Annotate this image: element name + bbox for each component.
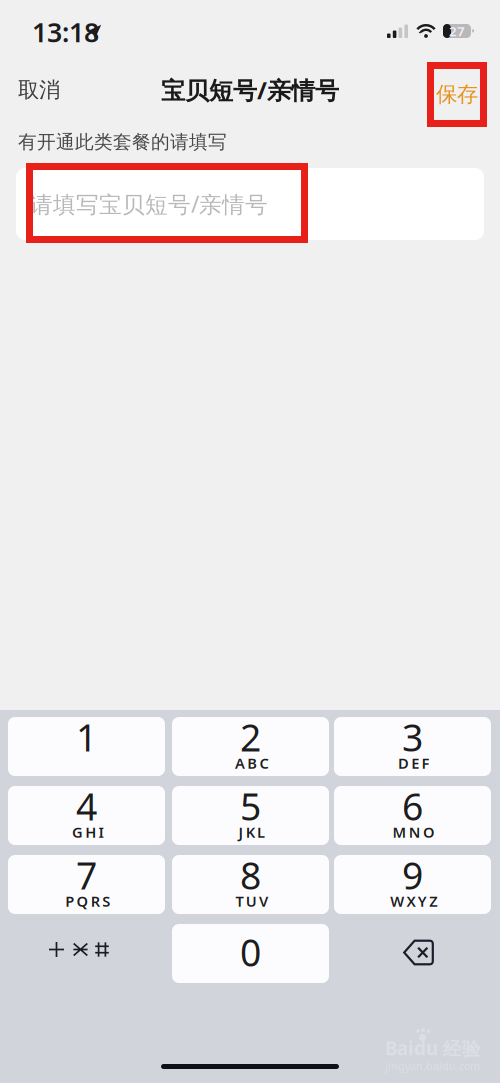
button[interactable]: 4 [8,786,165,845]
staticText: TUV [235,891,268,911]
staticText: 13:18 [32,14,99,50]
button[interactable]: 1 [8,717,165,776]
staticText: 9 [402,850,423,900]
staticText: 保存 [436,81,478,108]
button[interactable]: 7 [8,855,165,914]
button[interactable]: 8 [172,855,329,914]
staticText: 4 [76,781,97,831]
staticText: GHI [72,822,103,842]
staticText: WXYZ [390,891,437,911]
staticText: 3 [402,712,423,762]
button[interactable]: Plus, star and hash [8,924,165,983]
button[interactable]: 3 [334,717,491,776]
staticText: 有开通此类套餐的请填写 [18,130,227,153]
button[interactable]: 0 [172,924,329,983]
staticText: 请填写宝贝短号/亲情号 [30,189,268,219]
staticText: 取消 [18,77,60,103]
button[interactable]: 取消 [0,70,120,110]
button[interactable]: 保存 [430,65,483,123]
staticText: 2 [240,712,261,762]
staticText: 5 [240,781,261,831]
button[interactable]: 2 [172,717,329,776]
staticText: 1 [76,712,97,762]
staticText: Baidu 经验 [385,1036,481,1060]
staticText: 7 [76,850,97,900]
staticText: 8 [240,850,261,900]
button[interactable]: 5 [172,786,329,845]
staticText: 0 [240,927,261,977]
staticText: JKL [238,822,265,842]
staticText: MNO [392,822,435,842]
button[interactable]: 6 [334,786,491,845]
button[interactable]: 请填写宝贝短号/亲情号 [16,168,484,240]
staticText: 6 [402,781,423,831]
button[interactable]: Delete [334,924,491,983]
staticText: DEF [398,753,429,773]
staticText: 27 [449,22,465,40]
staticText: ABC [235,753,268,773]
staticText: PQRS [65,891,110,911]
button[interactable]: 9 [334,855,491,914]
staticText: 宝贝短号/亲情号 [161,74,339,106]
